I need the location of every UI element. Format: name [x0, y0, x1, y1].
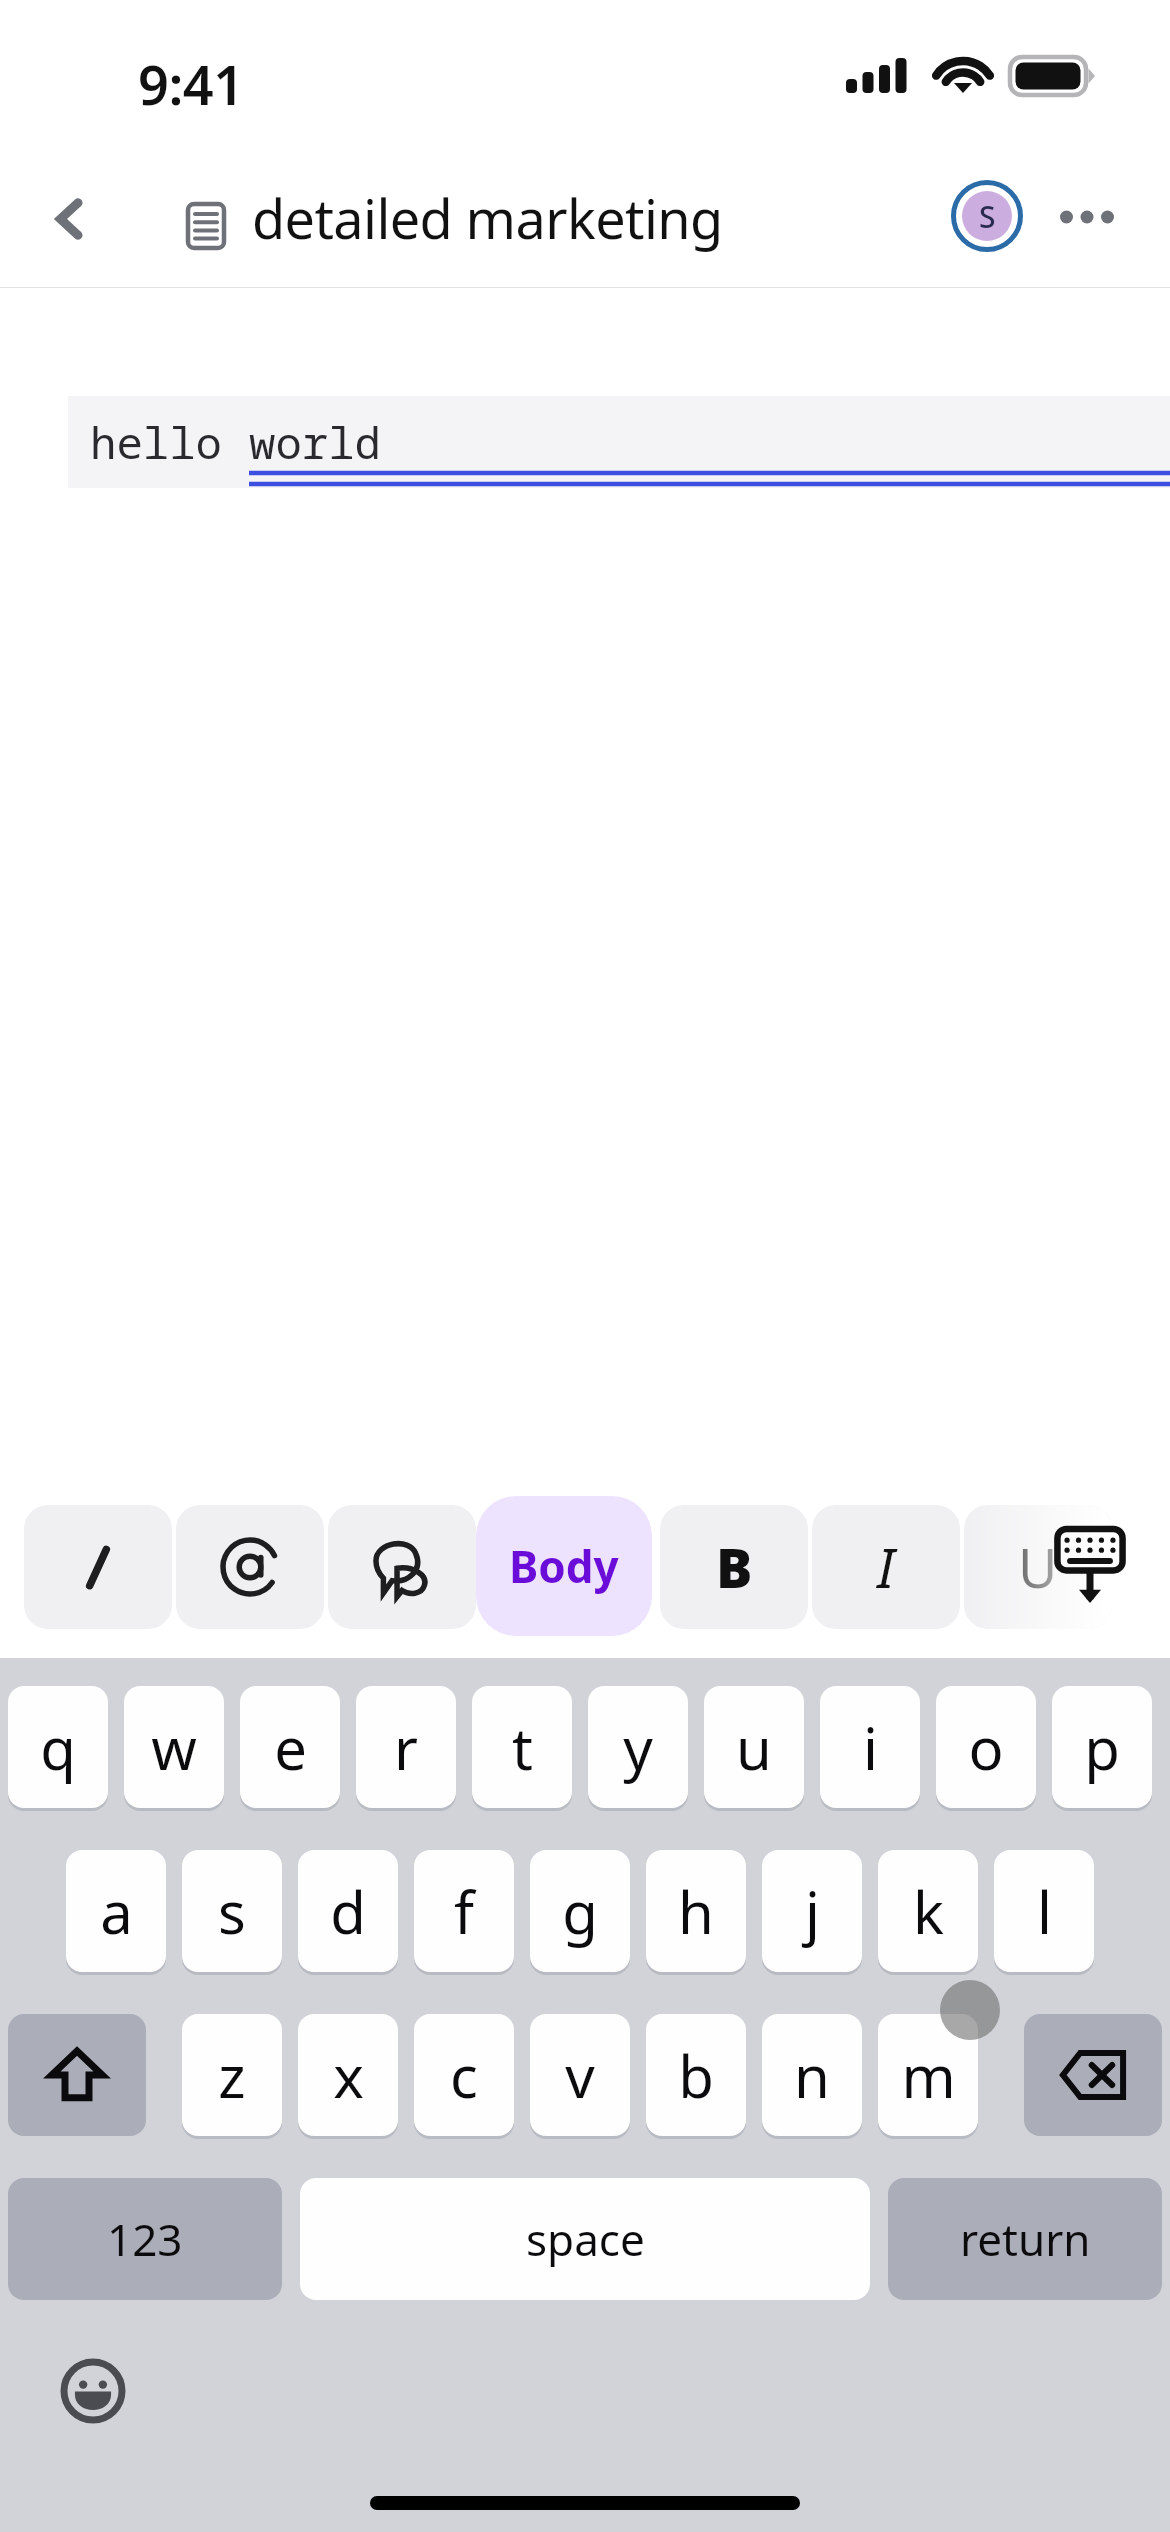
button[interactable]: e	[240, 1686, 340, 1808]
staticText: n	[794, 2036, 830, 2115]
staticText: s	[218, 1872, 246, 1951]
button[interactable]: Slash	[24, 1505, 172, 1629]
staticText: return	[960, 2209, 1091, 2269]
staticText: hello	[90, 412, 249, 472]
staticText: h	[678, 1872, 714, 1951]
button[interactable]: k	[878, 1850, 978, 1972]
staticText: S	[979, 196, 996, 237]
staticText: m	[901, 2036, 956, 2115]
button[interactable]: n	[762, 2014, 862, 2136]
button[interactable]: b	[646, 2014, 746, 2136]
button[interactable]: j	[762, 1850, 862, 1972]
staticText: q	[40, 1708, 76, 1787]
staticText: 9:41	[138, 47, 244, 121]
staticText: j	[805, 1872, 820, 1951]
button[interactable]: d	[298, 1850, 398, 1972]
button[interactable]: m	[878, 2014, 978, 2136]
staticText: f	[454, 1872, 474, 1951]
staticText: p	[1084, 1708, 1120, 1787]
button[interactable]: r	[356, 1686, 456, 1808]
staticText: detailed marketing	[252, 181, 723, 255]
button[interactable]: Emoji	[50, 2348, 136, 2434]
staticText: i	[863, 1708, 878, 1787]
button[interactable]: 123	[8, 2178, 282, 2300]
button[interactable]: Underline	[964, 1505, 1112, 1629]
button[interactable]: Hide keyboard	[1038, 1514, 1142, 1618]
button[interactable]: v	[530, 2014, 630, 2136]
button[interactable]: More options	[1044, 174, 1130, 260]
staticText: r	[394, 1708, 418, 1787]
staticText: o	[968, 1708, 1004, 1787]
button[interactable]: f	[414, 1850, 514, 1972]
button[interactable]: return	[888, 2178, 1162, 2300]
button[interactable]: y	[588, 1686, 688, 1808]
staticText: u	[736, 1708, 772, 1787]
button[interactable]: space	[300, 2178, 870, 2300]
staticText: v	[565, 2036, 595, 2115]
button[interactable]: x	[298, 2014, 398, 2136]
button[interactable]: s	[182, 1850, 282, 1972]
staticText: t	[512, 1708, 533, 1787]
button[interactable]: i	[820, 1686, 920, 1808]
button[interactable]: p	[1052, 1686, 1152, 1808]
button[interactable]: Shift	[8, 2014, 146, 2136]
staticText: k	[913, 1872, 944, 1951]
staticText: g	[562, 1872, 598, 1951]
staticText: w	[151, 1708, 197, 1787]
button[interactable]: h	[646, 1850, 746, 1972]
staticText: d	[330, 1872, 366, 1951]
button[interactable]: g	[530, 1850, 630, 1972]
staticText: 123	[107, 2209, 183, 2269]
button[interactable]: l	[994, 1850, 1094, 1972]
staticText: l	[1037, 1872, 1052, 1951]
button[interactable]: c	[414, 2014, 514, 2136]
button[interactable]: u	[704, 1686, 804, 1808]
staticText: U	[1018, 1530, 1058, 1604]
button[interactable]: Comment	[328, 1505, 476, 1629]
button[interactable]: w	[124, 1686, 224, 1808]
staticText: a	[100, 1872, 133, 1951]
button[interactable]: o	[936, 1686, 1036, 1808]
button[interactable]: Body	[476, 1496, 652, 1636]
button[interactable]: Italic	[812, 1505, 960, 1629]
button[interactable]: q	[8, 1686, 108, 1808]
staticText: Body	[509, 1536, 619, 1596]
button[interactable]: z	[182, 2014, 282, 2136]
button[interactable]: Mention	[176, 1505, 324, 1629]
button[interactable]: Backspace	[1024, 2014, 1162, 2136]
button[interactable]: t	[472, 1686, 572, 1808]
staticText: e	[274, 1708, 307, 1787]
button[interactable]: Account	[942, 171, 1032, 261]
staticText: space	[526, 2209, 645, 2269]
button[interactable]: a	[66, 1850, 166, 1972]
button[interactable]: Bold	[660, 1505, 808, 1629]
staticText: z	[218, 2036, 246, 2115]
staticText: x	[333, 2036, 364, 2115]
button[interactable]: Back	[26, 174, 116, 264]
staticText: world	[249, 412, 381, 472]
staticText: c	[450, 2036, 478, 2115]
staticText: b	[678, 2036, 714, 2115]
staticText: y	[623, 1708, 653, 1787]
staticText: B	[716, 1530, 753, 1604]
staticText: I	[877, 1530, 895, 1604]
